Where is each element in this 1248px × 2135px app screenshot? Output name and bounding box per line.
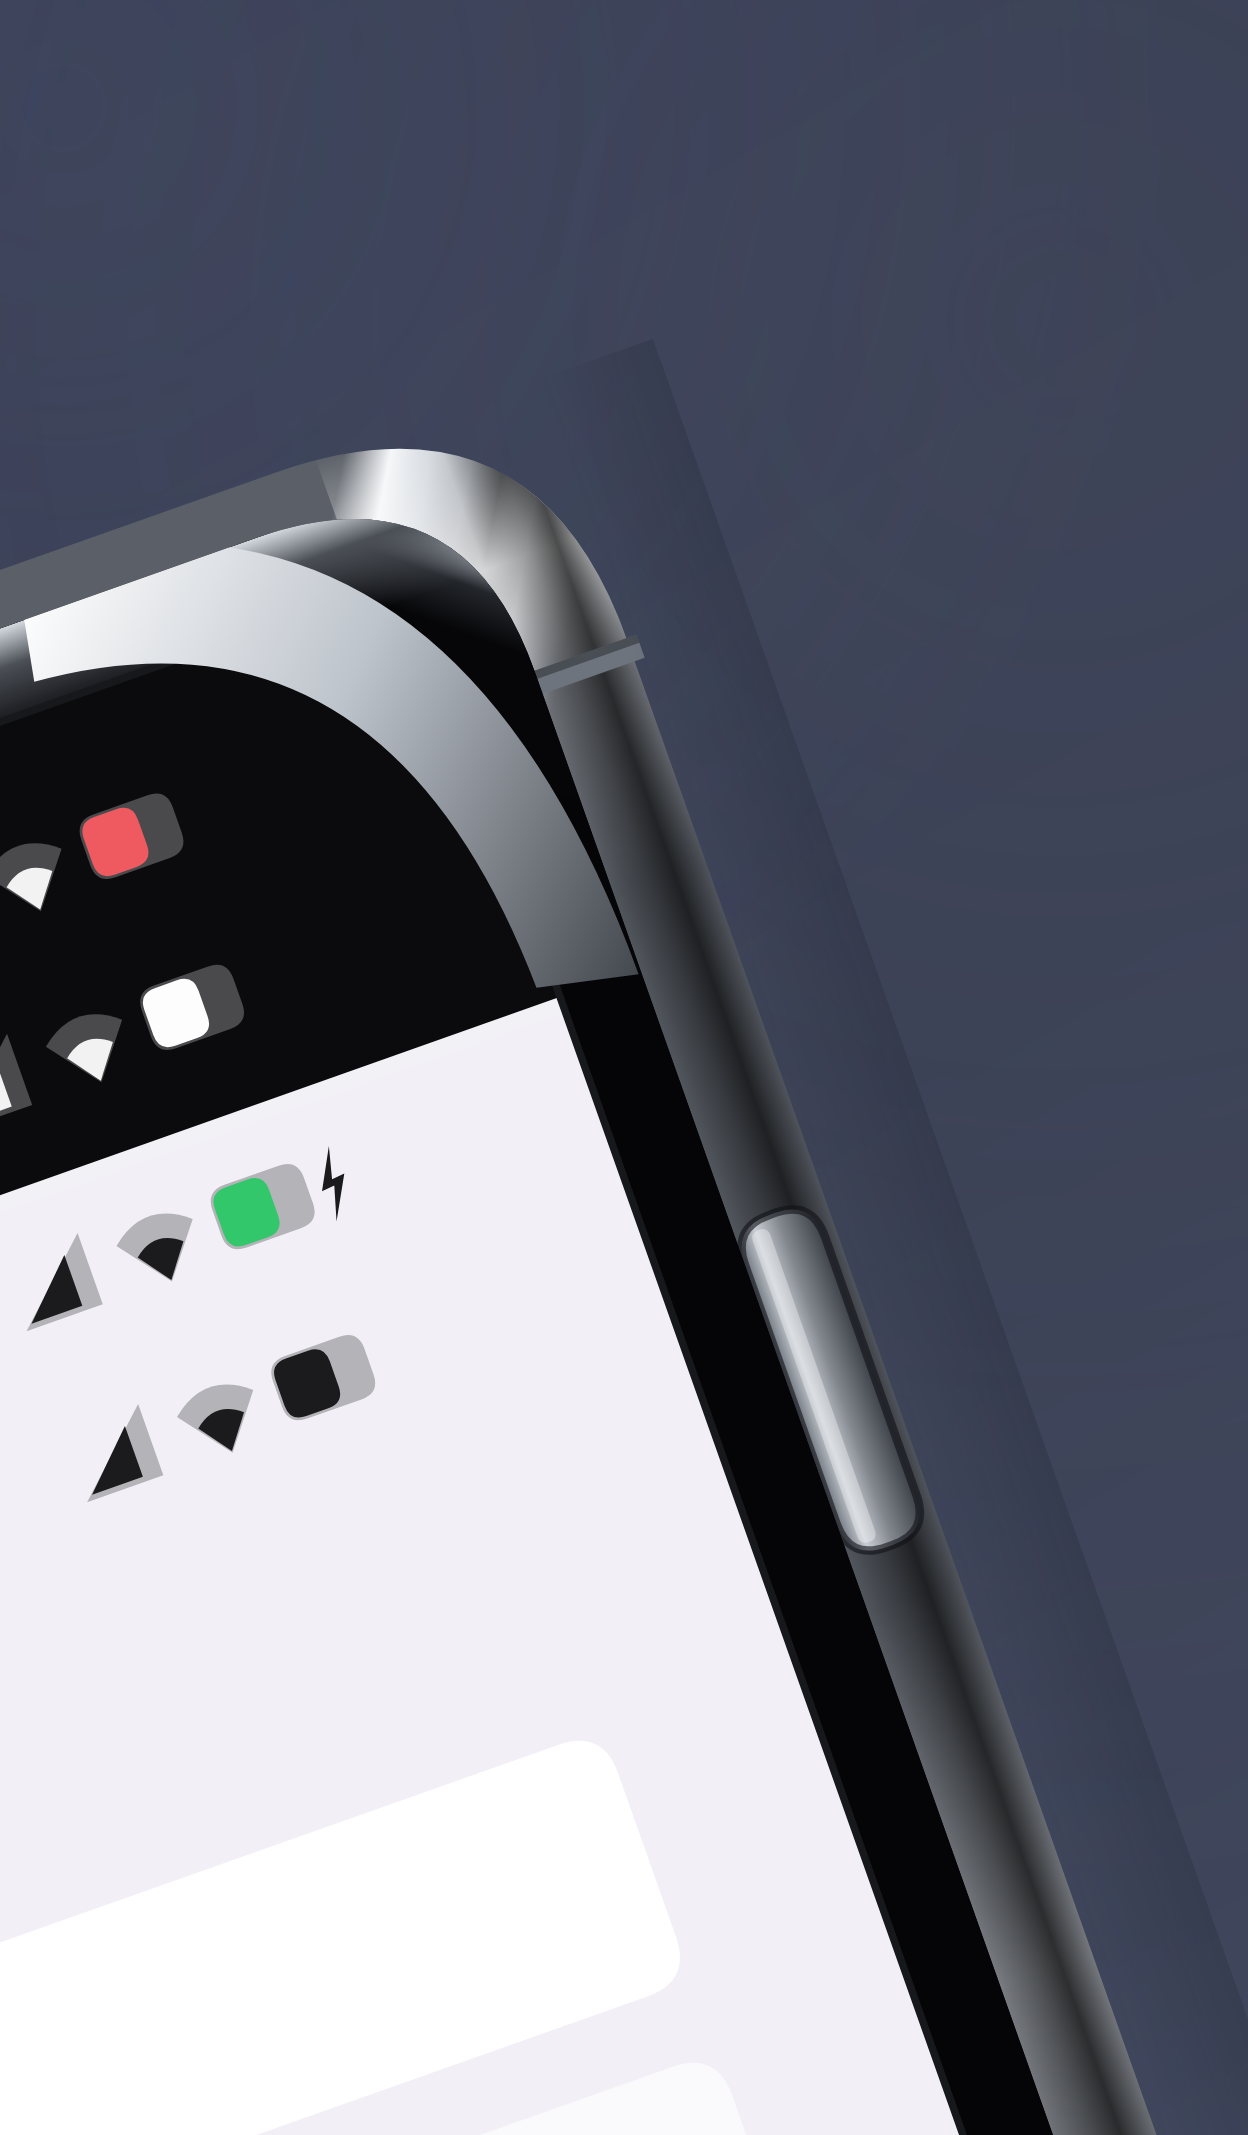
button[interactable]: Phone product render	[0, 0, 1248, 2135]
other: Advanced settings screen	[0, 0, 1248, 2135]
